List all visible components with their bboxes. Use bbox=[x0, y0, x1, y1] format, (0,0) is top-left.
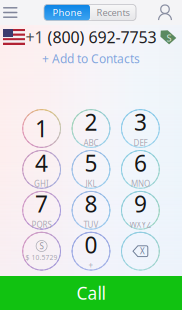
button[interactable]: 5 bbox=[71, 150, 110, 189]
staticText: ABC bbox=[83, 137, 98, 148]
staticText: DEF bbox=[133, 137, 147, 148]
staticText: S bbox=[166, 32, 171, 44]
staticText: 6 bbox=[134, 148, 147, 178]
button[interactable]: Menu bbox=[0, 1, 23, 23]
staticText: Call bbox=[76, 281, 105, 304]
button[interactable]: 1 bbox=[22, 109, 61, 148]
button[interactable]: 4 bbox=[22, 150, 61, 189]
button[interactable]: Price tag bbox=[159, 29, 177, 45]
staticText: 2 bbox=[84, 107, 97, 137]
staticText: 9 bbox=[134, 189, 147, 219]
staticText: MNO bbox=[131, 178, 150, 189]
button[interactable]: 7 bbox=[22, 191, 61, 230]
staticText: (800) 692-7753 bbox=[47, 26, 156, 48]
staticText: Phone bbox=[52, 6, 81, 19]
button[interactable]: Phone bbox=[44, 4, 90, 20]
staticText: 4 bbox=[35, 148, 48, 178]
staticText: 0 bbox=[84, 230, 97, 260]
staticText: + Add to Contacts bbox=[42, 50, 140, 66]
button[interactable]: Delete bbox=[121, 232, 160, 271]
button[interactable]: + Add to Contacts bbox=[0, 49, 182, 68]
button[interactable]: 2 bbox=[71, 109, 110, 148]
staticText: PQRS bbox=[32, 219, 52, 230]
button[interactable]: Balance bbox=[22, 232, 61, 271]
staticText: 1 bbox=[35, 113, 48, 143]
button[interactable]: Call bbox=[0, 276, 182, 310]
staticText: X bbox=[140, 246, 145, 256]
staticText: TUV bbox=[83, 219, 98, 230]
button[interactable]: 3 bbox=[121, 109, 160, 148]
staticText: GHI bbox=[34, 178, 49, 189]
staticText: Recents bbox=[96, 6, 129, 19]
staticText: 3 bbox=[134, 107, 147, 137]
staticText: +1 bbox=[25, 26, 43, 48]
button[interactable]: 9 bbox=[121, 191, 160, 230]
staticText: S bbox=[40, 241, 44, 251]
staticText: + bbox=[88, 260, 93, 271]
button[interactable]: Recents bbox=[90, 4, 136, 20]
button[interactable]: 8 bbox=[71, 191, 110, 230]
button[interactable]: 6 bbox=[121, 150, 160, 189]
button[interactable]: Contacts bbox=[153, 1, 182, 23]
staticText: 8 bbox=[84, 189, 97, 219]
staticText: 7 bbox=[35, 189, 48, 219]
staticText: $ 10.5729 bbox=[26, 253, 58, 262]
staticText: WXYZ bbox=[129, 219, 151, 230]
staticText: JKL bbox=[85, 178, 96, 189]
button[interactable]: 0 bbox=[71, 232, 110, 271]
staticText: 5 bbox=[84, 148, 97, 178]
